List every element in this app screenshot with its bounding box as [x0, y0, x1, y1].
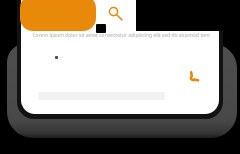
- button[interactable]: Overflow: [96, 24, 106, 33]
- button[interactable]: Call: [186, 68, 202, 84]
- button[interactable]: Search: [105, 3, 125, 23]
- button[interactable]: Menu: [20, 0, 96, 31]
- staticText: Lorem ipsum dolor sit amet consectetur a…: [33, 32, 210, 39]
